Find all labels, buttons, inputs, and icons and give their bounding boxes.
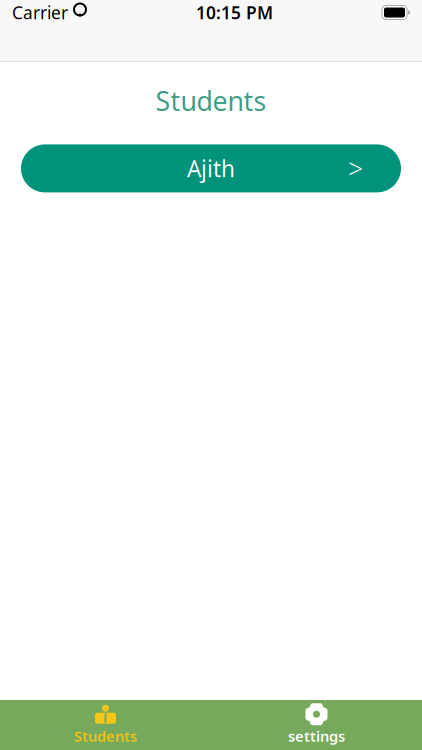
staticText: settings [288, 726, 345, 746]
button[interactable]: Ajith [21, 144, 401, 192]
button[interactable]: Students [0, 700, 211, 750]
staticText: Students [155, 83, 266, 118]
staticText: > [348, 151, 363, 186]
button[interactable]: settings [211, 700, 422, 750]
staticText: Students [74, 726, 137, 746]
staticText: Carrier [12, 1, 68, 24]
staticText: Ajith [187, 153, 235, 183]
staticText: 10:15 PM [196, 1, 273, 24]
